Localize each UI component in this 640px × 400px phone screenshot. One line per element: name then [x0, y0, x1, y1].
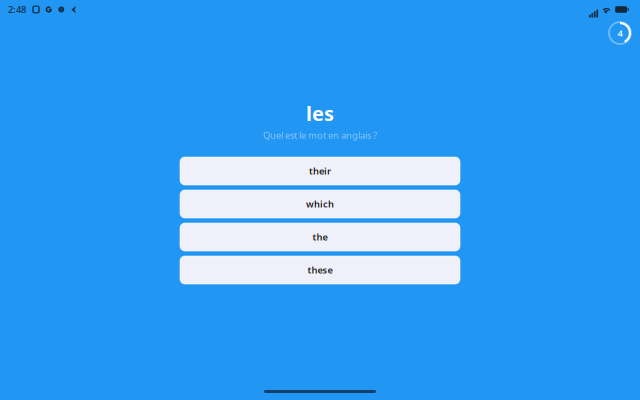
button[interactable]: which — [180, 190, 460, 218]
staticText: les — [306, 100, 334, 127]
staticText: the — [312, 231, 327, 243]
staticText: which — [306, 198, 334, 210]
button[interactable]: the — [180, 223, 460, 251]
button[interactable]: their — [180, 157, 460, 185]
staticText: Quel est le mot en anglais ? — [263, 129, 377, 141]
staticText: these — [307, 264, 332, 276]
staticText: their — [309, 165, 331, 177]
staticText: 2:48 — [8, 3, 26, 16]
button[interactable]: Questions remaining — [607, 20, 633, 46]
staticText: 4 — [617, 27, 622, 39]
button[interactable]: these — [180, 256, 460, 284]
